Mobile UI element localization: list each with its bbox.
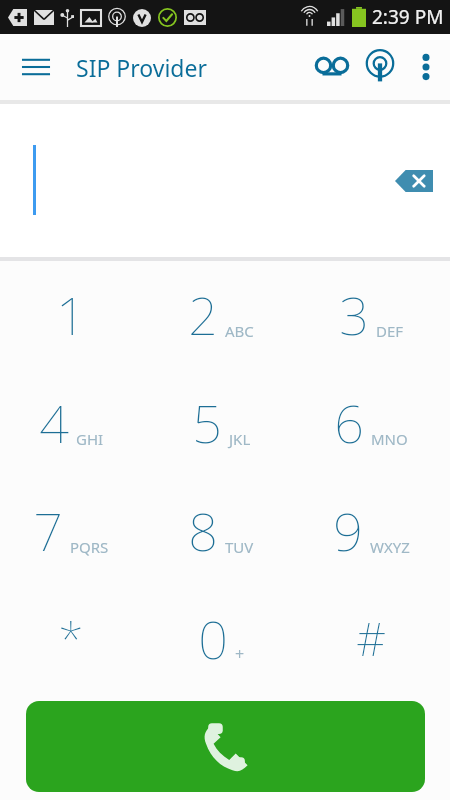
- button[interactable]: 4: [0, 368, 150, 476]
- button[interactable]: Menu: [12, 43, 60, 91]
- staticText: MNO: [371, 429, 408, 449]
- button[interactable]: 9: [300, 476, 450, 584]
- staticText: 8: [188, 495, 218, 566]
- button[interactable]: Voicemail: [308, 43, 356, 91]
- button[interactable]: Call: [26, 701, 425, 792]
- staticText: 6: [334, 387, 364, 458]
- staticText: 2:39 PM: [372, 4, 444, 30]
- staticText: *: [58, 607, 84, 670]
- staticText: 5: [192, 387, 222, 458]
- staticText: 3: [339, 279, 369, 350]
- button[interactable]: #: [300, 584, 450, 692]
- button[interactable]: 2: [150, 261, 300, 368]
- button[interactable]: 1: [0, 261, 150, 368]
- staticText: WXYZ: [370, 537, 410, 557]
- staticText: #: [356, 607, 386, 670]
- staticText: DEF: [376, 321, 404, 341]
- staticText: GHI: [76, 429, 104, 449]
- button[interactable]: 3: [300, 261, 450, 368]
- button[interactable]: More options: [404, 45, 448, 89]
- staticText: SIP Provider: [76, 52, 207, 83]
- button[interactable]: 6: [300, 368, 450, 476]
- staticText: 4: [39, 387, 69, 458]
- button[interactable]: 5: [150, 368, 300, 476]
- staticText: 7: [33, 495, 63, 566]
- button[interactable]: 8: [150, 476, 300, 584]
- button[interactable]: *: [0, 584, 150, 692]
- button[interactable]: Backspace: [386, 153, 442, 209]
- staticText: JKL: [229, 429, 251, 449]
- staticText: 9: [333, 495, 363, 566]
- staticText: 0: [198, 603, 228, 674]
- staticText: PQRS: [70, 537, 109, 557]
- button[interactable]: SIP account: [356, 43, 404, 91]
- button[interactable]: 0: [150, 584, 300, 692]
- staticText: ABC: [225, 321, 254, 341]
- staticText: +: [235, 643, 245, 665]
- button[interactable]: 7: [0, 476, 150, 584]
- staticText: 1: [56, 279, 86, 350]
- staticText: TUV: [225, 537, 254, 557]
- staticText: 2: [188, 279, 218, 350]
